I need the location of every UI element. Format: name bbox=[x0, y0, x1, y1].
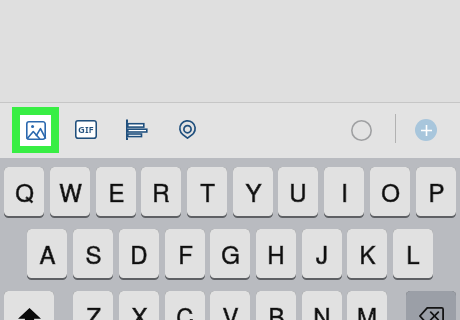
button[interactable]: Shift bbox=[4, 291, 54, 320]
button[interactable]: G bbox=[210, 229, 250, 280]
button[interactable]: GIF bbox=[70, 112, 102, 146]
staticText: D bbox=[130, 236, 148, 270]
staticText: Z bbox=[86, 298, 101, 320]
button[interactable]: X bbox=[119, 291, 159, 320]
staticText: J bbox=[316, 236, 328, 270]
staticText: P bbox=[428, 174, 445, 208]
staticText: G bbox=[221, 236, 240, 270]
staticText: W bbox=[59, 174, 82, 208]
staticText: I bbox=[341, 174, 348, 208]
staticText: X bbox=[131, 298, 148, 320]
button[interactable]: Photos bbox=[12, 107, 59, 153]
staticText: Y bbox=[245, 174, 262, 208]
staticText: T bbox=[200, 174, 215, 208]
staticText: Q bbox=[15, 174, 34, 208]
staticText: L bbox=[406, 236, 420, 270]
staticText: H bbox=[267, 236, 285, 270]
staticText: R bbox=[152, 174, 170, 208]
staticText: U bbox=[289, 174, 307, 208]
staticText: X bbox=[131, 298, 148, 320]
staticText: P bbox=[428, 174, 445, 208]
button[interactable]: Digital Touch bbox=[118, 112, 152, 146]
staticText: R bbox=[152, 174, 170, 208]
staticText: K bbox=[359, 236, 376, 270]
staticText: Q bbox=[15, 174, 34, 208]
button[interactable]: T bbox=[187, 167, 227, 218]
staticText: C bbox=[176, 298, 194, 320]
staticText: D bbox=[130, 236, 148, 270]
button[interactable]: U bbox=[278, 167, 318, 218]
button[interactable]: I bbox=[324, 167, 364, 218]
staticText: Y bbox=[245, 174, 262, 208]
staticText: G bbox=[221, 236, 240, 270]
staticText: N bbox=[313, 298, 331, 320]
staticText: B bbox=[268, 298, 285, 320]
button[interactable]: R bbox=[141, 167, 181, 218]
staticText: E bbox=[108, 174, 125, 208]
staticText: F bbox=[178, 236, 193, 270]
button[interactable]: E bbox=[96, 167, 136, 218]
staticText: F bbox=[178, 236, 193, 270]
staticText: L bbox=[406, 236, 420, 270]
button[interactable]: J bbox=[302, 229, 342, 280]
button[interactable]: H bbox=[256, 229, 296, 280]
staticText: S bbox=[85, 236, 102, 270]
staticText: E bbox=[108, 174, 125, 208]
staticText: Z bbox=[86, 298, 101, 320]
staticText: J bbox=[316, 236, 328, 270]
button[interactable]: Q bbox=[4, 167, 44, 218]
staticText: I bbox=[341, 174, 348, 208]
staticText: K bbox=[359, 236, 376, 270]
staticText: O bbox=[381, 174, 400, 208]
button[interactable]: Add app bbox=[415, 119, 437, 141]
staticText: M bbox=[357, 298, 377, 320]
button[interactable]: Z bbox=[73, 291, 113, 320]
staticText: GIF bbox=[78, 123, 94, 136]
staticText: A bbox=[39, 236, 56, 270]
button[interactable]: L bbox=[393, 229, 433, 280]
button[interactable]: A bbox=[27, 229, 67, 280]
button[interactable]: App Store bbox=[348, 117, 374, 143]
staticText: H bbox=[267, 236, 285, 270]
staticText: V bbox=[222, 298, 239, 320]
staticText: A bbox=[39, 236, 56, 270]
button[interactable]: B bbox=[256, 291, 296, 320]
button[interactable]: F bbox=[165, 229, 205, 280]
staticText: U bbox=[289, 174, 307, 208]
staticText: N bbox=[313, 298, 331, 320]
button[interactable]: Y bbox=[233, 167, 273, 218]
button[interactable]: N bbox=[302, 291, 342, 320]
staticText: W bbox=[59, 174, 82, 208]
button[interactable]: Location bbox=[172, 112, 204, 144]
button[interactable]: P bbox=[416, 167, 456, 218]
staticText: V bbox=[222, 298, 239, 320]
button[interactable]: O bbox=[370, 167, 410, 218]
button[interactable]: S bbox=[73, 229, 113, 280]
staticText: C bbox=[176, 298, 194, 320]
button[interactable]: D bbox=[119, 229, 159, 280]
staticText: M bbox=[357, 298, 377, 320]
staticText: T bbox=[200, 174, 215, 208]
button[interactable]: Delete bbox=[406, 291, 456, 320]
button[interactable]: W bbox=[50, 167, 90, 218]
staticText: B bbox=[268, 298, 285, 320]
button[interactable]: V bbox=[210, 291, 250, 320]
button[interactable]: C bbox=[165, 291, 205, 320]
button[interactable]: K bbox=[347, 229, 387, 280]
staticText: O bbox=[381, 174, 400, 208]
staticText: S bbox=[85, 236, 102, 270]
button[interactable]: M bbox=[347, 291, 387, 320]
